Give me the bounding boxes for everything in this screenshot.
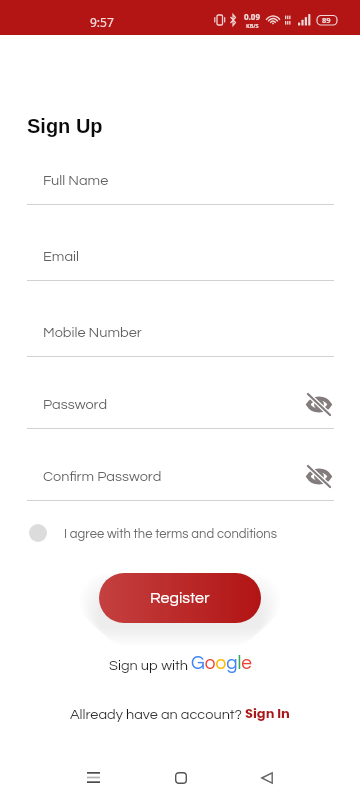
staticText: 9:57 [90,14,114,30]
button[interactable]: Home [160,757,201,798]
staticText: Allready have an account? [70,707,245,722]
staticText: Google [191,653,252,673]
button[interactable]: Toggle password visibility [305,390,333,418]
staticText: Register [150,590,210,606]
button[interactable]: Toggle password visibility [305,462,333,490]
staticText: Full Name [43,173,109,188]
staticText: Sign up with [109,658,191,673]
staticText: Email [43,249,79,264]
button[interactable]: Back [246,757,287,798]
button[interactable]: Sign up with [0,653,360,673]
staticText: Sign Up [27,115,103,137]
button[interactable]: Register [99,573,261,623]
button[interactable]: I agree with the terms and conditions [29,524,277,542]
staticText: Mobile Number [43,325,142,340]
staticText: KB/S [246,22,259,29]
button[interactable]: Sign In [245,704,290,722]
staticText: Confirm Password [43,469,162,484]
button[interactable]: Recent apps [73,757,114,798]
staticText: 0.09 [244,11,260,22]
staticText: I agree with the terms and conditions [64,527,277,540]
staticText: 89 [322,15,331,25]
staticText: Password [43,397,108,412]
staticText: Sign In [245,704,290,722]
